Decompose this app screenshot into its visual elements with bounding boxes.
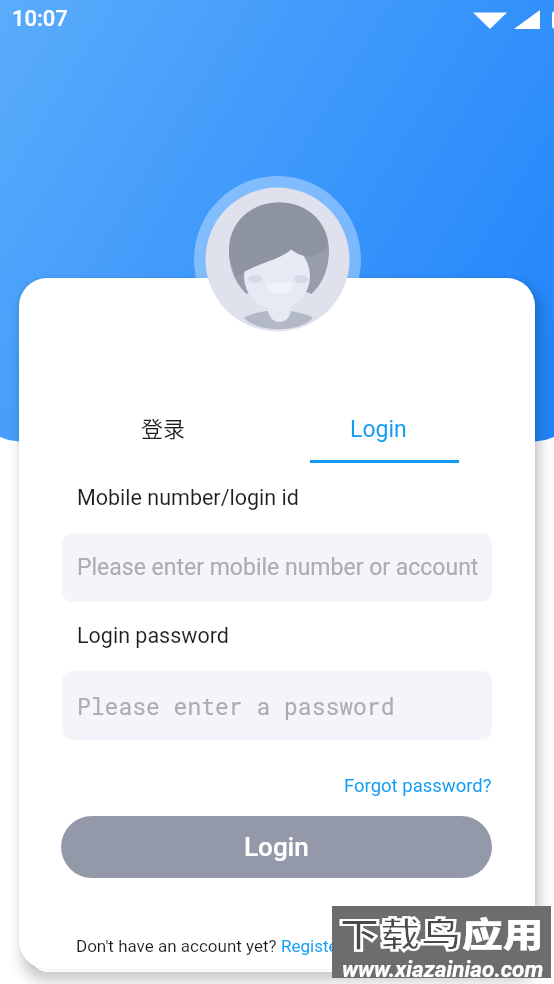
button[interactable]: Please enter a password [62,671,492,740]
staticText: Login [350,416,407,443]
staticText: Login password [77,623,229,648]
staticText: Don't have an account yet? [76,936,281,956]
staticText: Forgot password? [344,775,492,797]
staticText: 下载鸟 [339,908,461,957]
other: Wifi, signal and battery status [472,10,542,29]
staticText: www.xiazainiao.com [342,956,544,982]
staticText: Please enter a password [77,691,395,721]
staticText: 下载鸟 [339,908,461,957]
staticText: Register now [281,936,380,956]
staticText: Mobile number/login id [77,485,299,510]
staticText: Login [244,832,309,862]
button[interactable]: Login [61,816,492,878]
button[interactable]: 登录 [103,399,223,455]
button[interactable]: Login [310,401,446,457]
button[interactable]: Register now [281,936,380,956]
staticText: 10:07 [12,6,68,32]
staticText: 应用 [462,908,544,957]
staticText: 登录 [141,411,186,443]
staticText: Please enter mobile number or account [77,554,479,581]
button[interactable]: Please enter mobile number or account [62,533,492,602]
button[interactable]: Forgot password? [335,769,501,803]
